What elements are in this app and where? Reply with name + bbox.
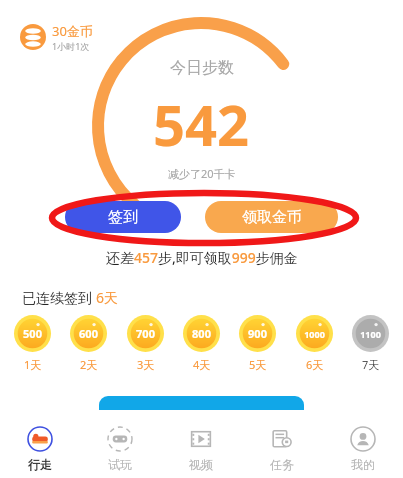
button[interactable]: 1000 [296, 315, 333, 372]
other: 任务 [269, 426, 295, 452]
staticText: 1小时1次 [52, 40, 90, 52]
button[interactable]: 任务 [241, 412, 322, 478]
staticText: 4天 [193, 357, 211, 372]
button[interactable]: 1100 [352, 315, 389, 372]
staticText: 800 [192, 326, 211, 341]
button[interactable]: 500 [14, 315, 51, 372]
staticText: 视频 [189, 457, 213, 472]
button[interactable]: 900 [239, 315, 276, 372]
staticText: 600 [79, 326, 98, 341]
button[interactable]: 领取金币 [205, 201, 338, 233]
other: 我的 [350, 426, 376, 452]
button[interactable]: 视频 [160, 412, 241, 478]
button[interactable]: 800 [183, 315, 220, 372]
button[interactable]: 我的 [322, 412, 403, 478]
staticText: 签到 [108, 208, 138, 227]
button[interactable]: 700 [127, 315, 164, 372]
staticText: 6天 [306, 357, 324, 372]
button[interactable]: 签到 [65, 201, 181, 233]
staticText: 任务 [270, 457, 294, 472]
staticText: 1000 [304, 328, 325, 340]
button[interactable]: 30金币 [18, 20, 95, 54]
staticText: 1天 [24, 357, 42, 372]
staticText: 还差457步,即可领取999步佣金 [106, 248, 298, 267]
staticText: 500 [23, 326, 42, 341]
button[interactable]: 行走 [0, 412, 80, 478]
other: 行走 [27, 426, 53, 452]
button[interactable]: 试玩 [80, 412, 160, 478]
staticText: 我的 [351, 457, 375, 472]
staticText: 700 [136, 326, 155, 341]
other: 视频 [188, 426, 214, 452]
staticText: 已连续签到 [22, 288, 96, 307]
staticText: 3天 [137, 357, 155, 372]
button[interactable]: 600 [70, 315, 107, 372]
staticText: 30金币 [52, 22, 93, 40]
staticText: 542 [153, 86, 250, 162]
other: 试玩 [107, 426, 133, 452]
staticText: 7天 [362, 357, 380, 372]
staticText: 行走 [28, 457, 52, 472]
staticText: 6天 [96, 288, 119, 307]
staticText: 5天 [249, 357, 267, 372]
staticText: 领取金币 [242, 208, 302, 227]
staticText: 900 [248, 326, 267, 341]
staticText: 1100 [360, 328, 381, 340]
staticText: 今日步数 [170, 58, 234, 78]
staticText: 试玩 [108, 457, 132, 472]
staticText: 减少了20千卡 [168, 166, 236, 181]
staticText: 2天 [80, 357, 98, 372]
